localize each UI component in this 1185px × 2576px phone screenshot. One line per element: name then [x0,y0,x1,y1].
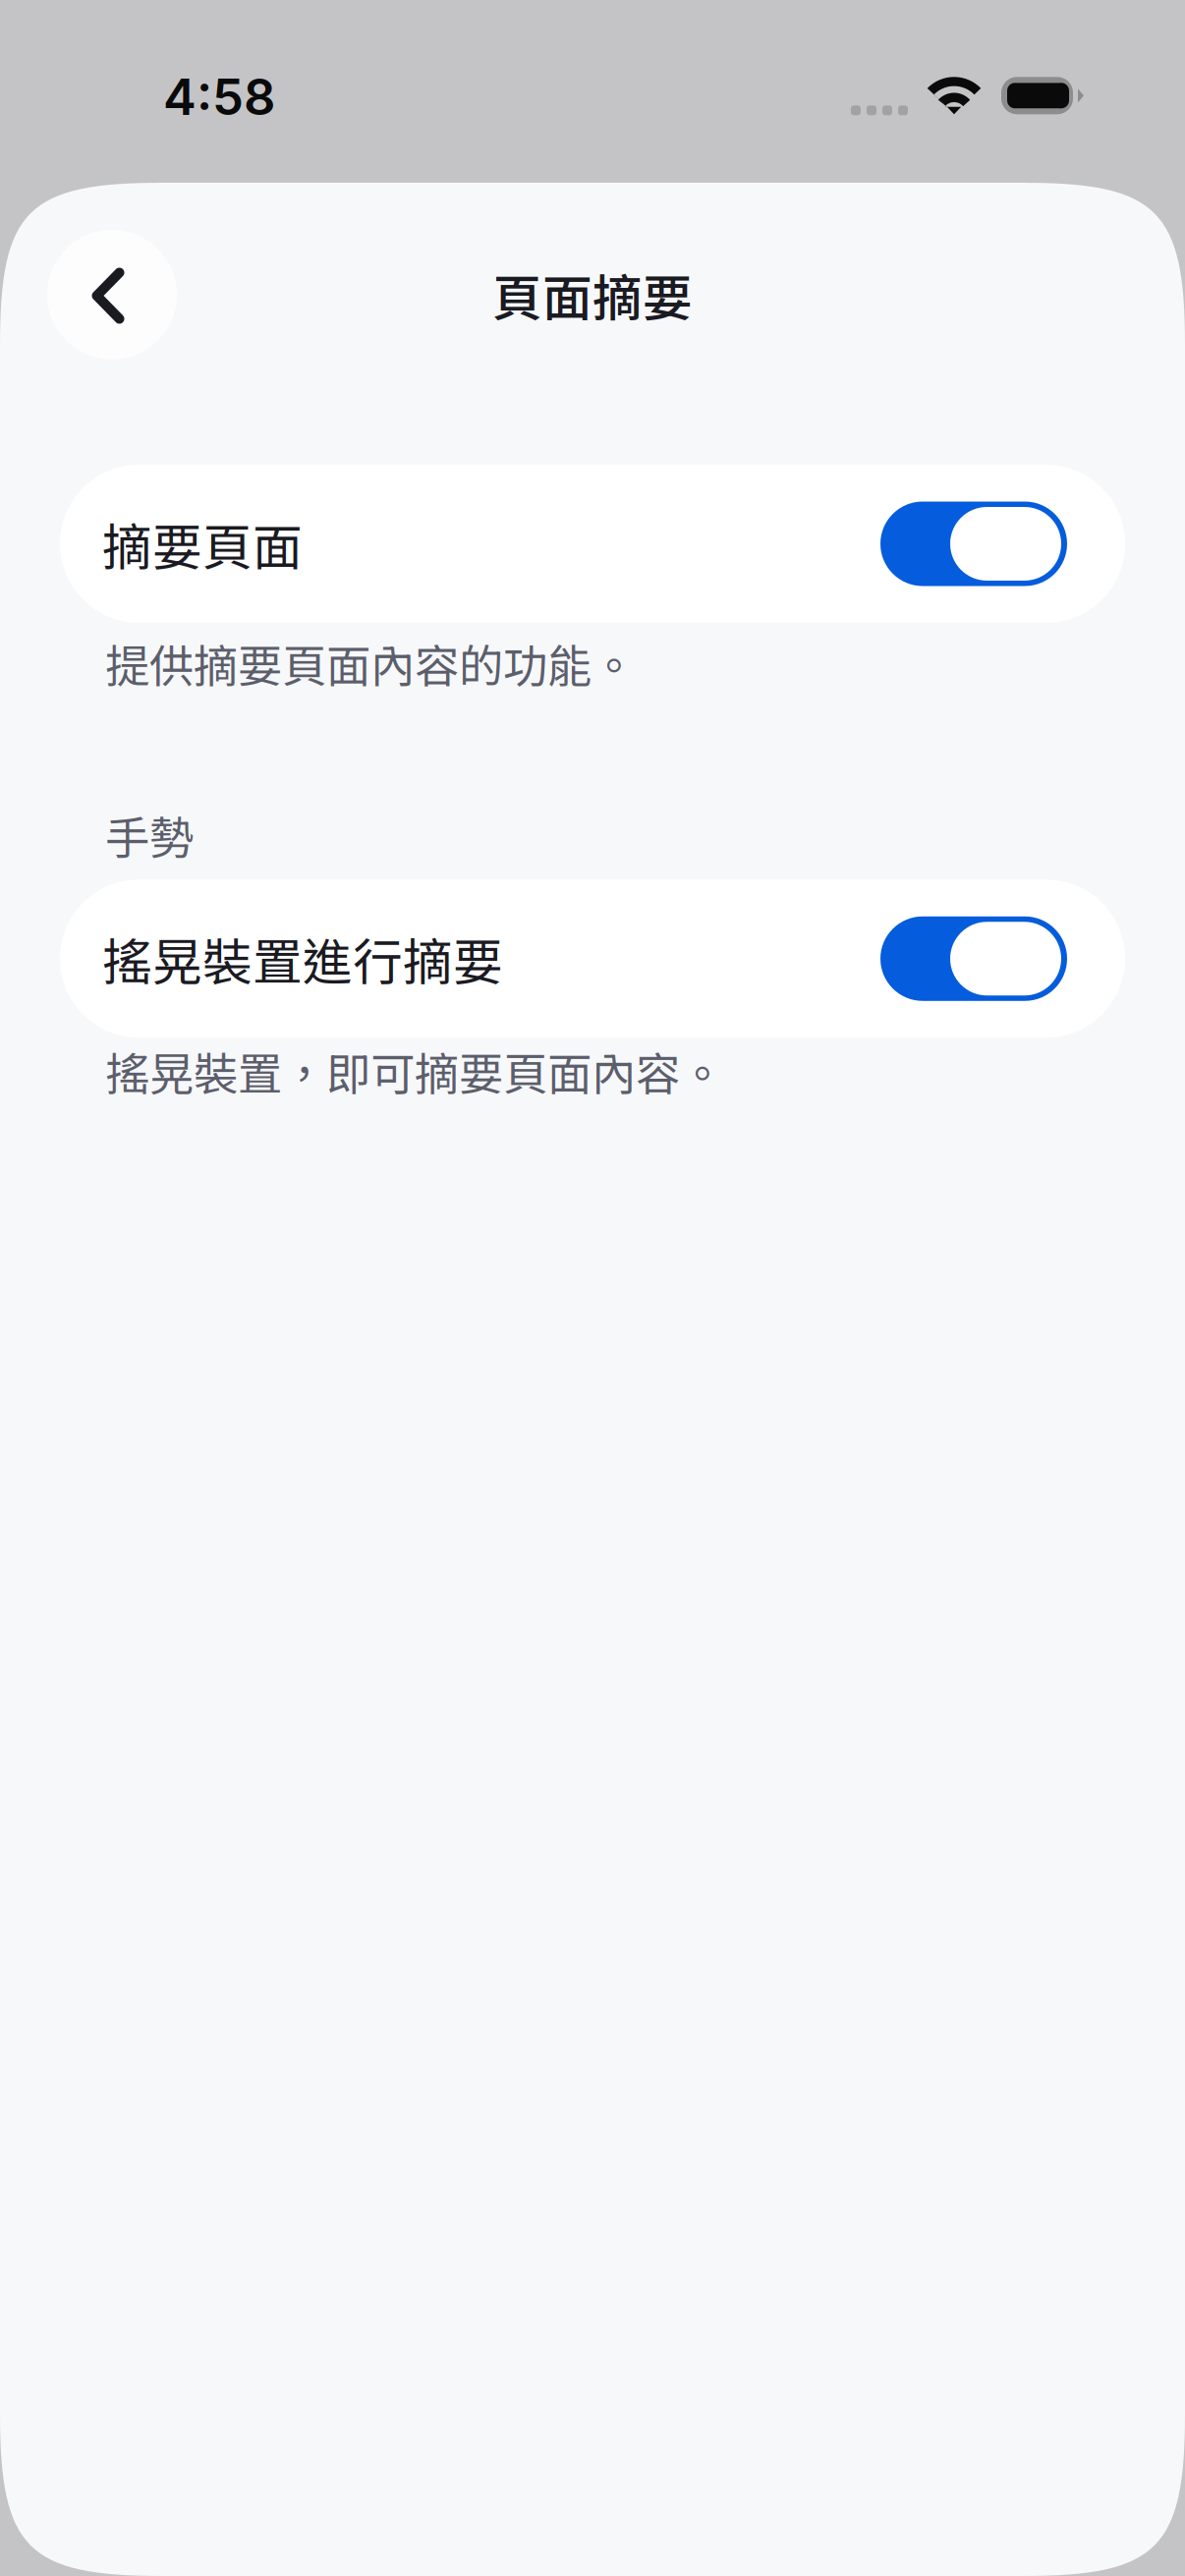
staticText: 4:58 [163,67,275,127]
staticText: 搖晃裝置進行摘要 [102,923,503,995]
staticText: 頁面摘要 [492,259,693,331]
button[interactable]: 摘要頁面 [60,465,1125,623]
button[interactable]: Back [47,230,177,360]
button[interactable]: 搖晃裝置進行摘要 [60,880,1125,1038]
staticText: 提供摘要頁面內容的功能。 [105,631,636,695]
staticText: 搖晃裝置，即可摘要頁面內容。 [105,1039,724,1103]
staticText: 摘要頁面 [102,508,303,580]
staticText: 手勢 [105,802,194,867]
